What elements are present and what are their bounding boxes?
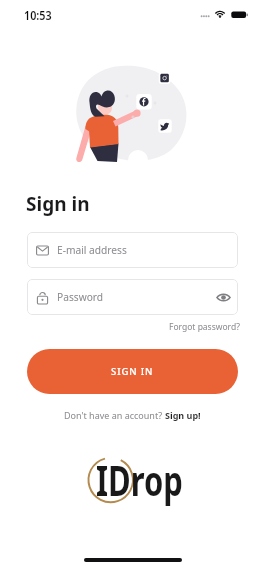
button[interactable]: Password	[27, 279, 238, 315]
staticText: Sign up!	[165, 409, 201, 421]
staticText: E-mail address	[57, 243, 127, 257]
staticText: IDrop	[96, 452, 183, 508]
button[interactable]: E-mail address	[27, 232, 238, 268]
staticText: Forgot password?	[169, 321, 240, 333]
staticText: Sign in	[26, 191, 90, 217]
button[interactable]: Forgot password?	[167, 319, 242, 335]
staticText: Password	[57, 290, 104, 304]
button[interactable]: SIGN IN	[27, 349, 238, 394]
button[interactable]: Sign up!	[165, 409, 201, 421]
staticText: Don't have an account?	[64, 409, 165, 421]
staticText: SIGN IN	[111, 365, 154, 378]
button[interactable]: Show password	[215, 289, 231, 305]
staticText: 10:53	[24, 7, 52, 24]
